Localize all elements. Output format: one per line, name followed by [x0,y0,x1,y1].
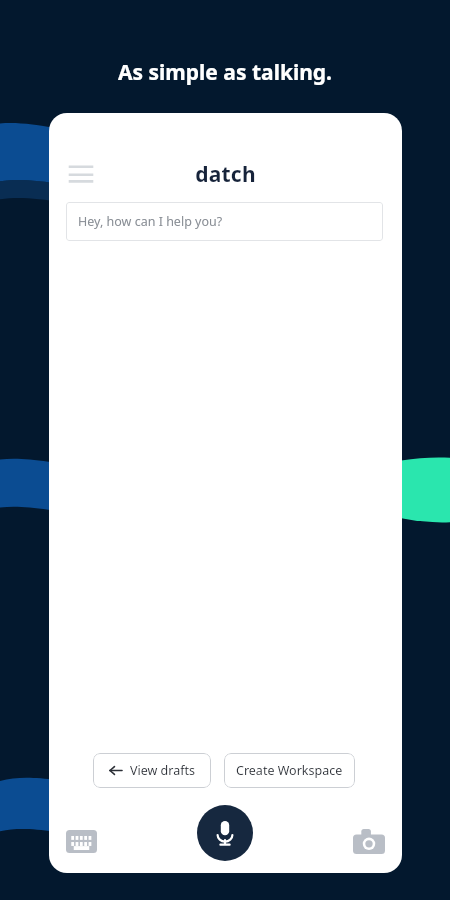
staticText: datch [49,160,402,873]
staticText: Hey, how can I help you? [78,213,223,230]
staticText: View drafts [130,762,196,779]
button[interactable]: Hey, how can I help you? [66,202,383,241]
button[interactable]: Create Workspace [224,753,355,788]
button[interactable]: Camera [347,819,391,863]
button[interactable]: Voice input [197,805,253,861]
button[interactable]: View drafts [93,753,211,788]
staticText: Create Workspace [236,762,343,779]
button[interactable]: Keyboard [59,819,103,863]
staticText: As simple as talking. [0,58,450,900]
button[interactable]: Menu [61,156,101,196]
